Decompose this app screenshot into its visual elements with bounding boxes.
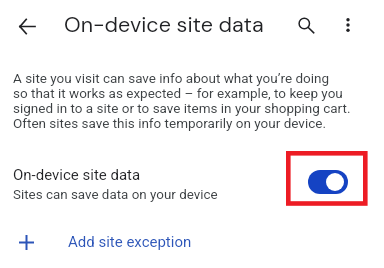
staticText: On-device site data (64, 11, 264, 39)
staticText: Sites can save data on your device (13, 187, 218, 203)
staticText: A site you visit can save info about wha… (13, 70, 351, 131)
button[interactable]: More options (330, 7, 366, 43)
button[interactable]: On-device site data toggle (308, 170, 348, 194)
staticText: On-device site data (13, 166, 141, 184)
button[interactable]: On-device site data (0, 158, 384, 210)
button[interactable]: Back (7, 7, 46, 46)
button[interactable]: Add site exception (0, 218, 384, 266)
button[interactable]: Search (288, 7, 324, 43)
staticText: Add site exception (68, 233, 192, 251)
